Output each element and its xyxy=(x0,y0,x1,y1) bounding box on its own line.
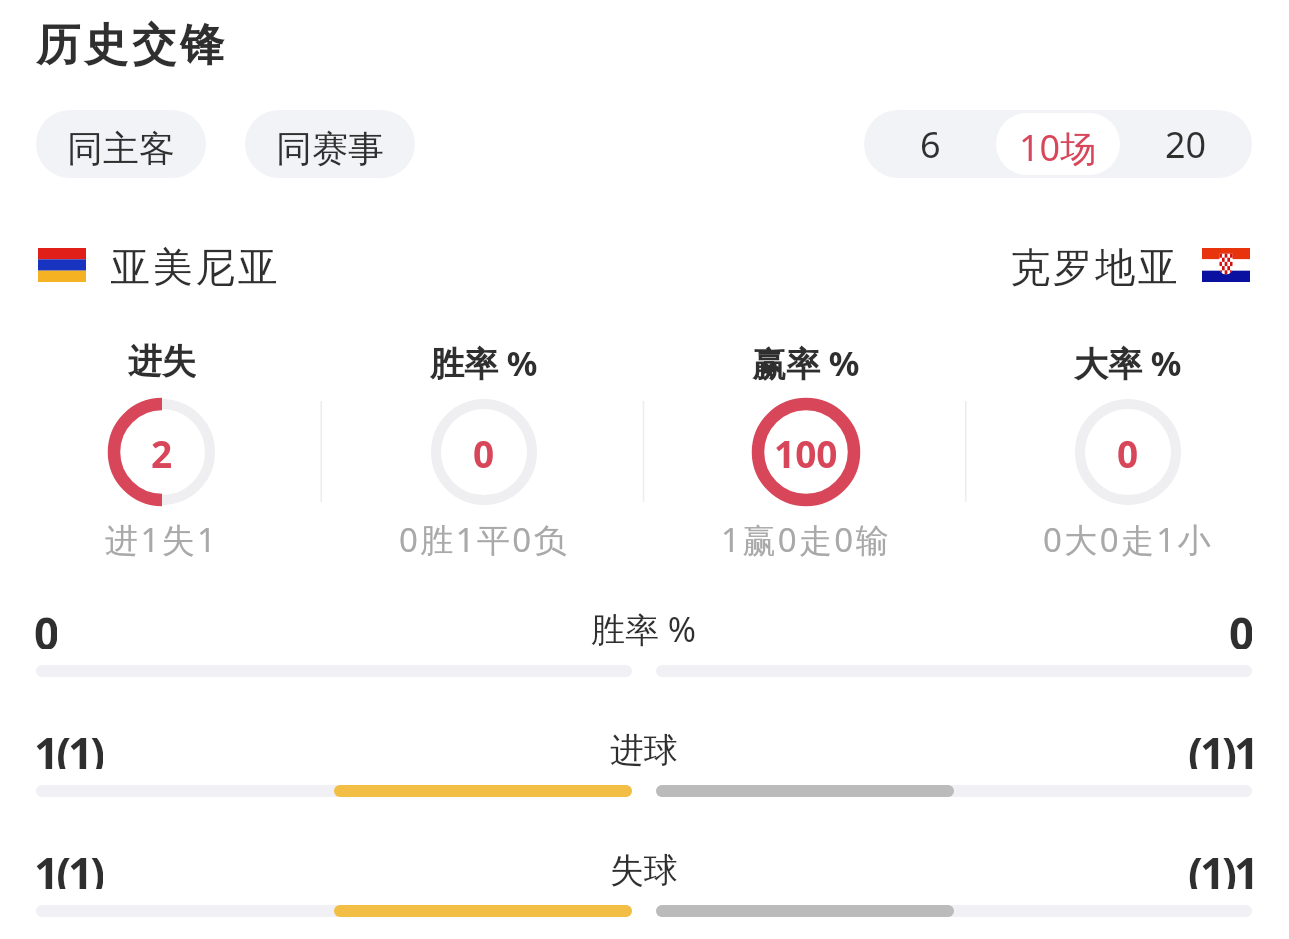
staticText: 进失 xyxy=(128,340,196,381)
button[interactable]: 进失 xyxy=(0,340,323,557)
button[interactable]: 胜率 % xyxy=(323,340,645,557)
staticText: 进球 xyxy=(610,729,678,772)
staticText: 同赛事 xyxy=(276,126,384,171)
staticText: 进1失1 xyxy=(105,517,219,557)
staticText: 亚美尼亚 xyxy=(109,242,279,292)
staticText: 克罗地亚 xyxy=(1009,242,1179,292)
other: Croatia flag xyxy=(1202,248,1250,282)
staticText: 0胜1平0负 xyxy=(399,517,570,557)
staticText: 1赢0走0输 xyxy=(721,517,892,557)
staticText: 20 xyxy=(1165,120,1207,169)
staticText: 1(1) xyxy=(34,723,103,769)
button[interactable]: 10场 xyxy=(996,113,1120,175)
staticText: 0 xyxy=(1229,603,1252,649)
staticText: 胜率 % xyxy=(591,606,697,652)
button[interactable]: 同主客 xyxy=(36,110,206,178)
button[interactable]: 同赛事 xyxy=(245,110,415,178)
button[interactable]: 20 xyxy=(1120,110,1252,178)
staticText: 0 xyxy=(473,428,495,478)
staticText: 2 xyxy=(151,428,173,478)
staticText: 1(1) xyxy=(34,843,103,889)
staticText: 6 xyxy=(920,120,941,169)
staticText: (1)1 xyxy=(1188,843,1257,889)
staticText: (1)1 xyxy=(1188,723,1257,769)
button[interactable]: 6 xyxy=(864,110,996,178)
staticText: 同主客 xyxy=(67,126,175,171)
staticText: 0 xyxy=(34,603,57,649)
staticText: 历史交锋 xyxy=(34,18,226,73)
staticText: 赢率 % xyxy=(752,340,860,381)
staticText: 0 xyxy=(1117,428,1139,478)
staticText: 大率 % xyxy=(1074,340,1182,381)
staticText: 10场 xyxy=(1019,123,1097,172)
staticText: 失球 xyxy=(610,849,678,892)
staticText: 胜率 % xyxy=(430,340,538,381)
staticText: 0大0走1小 xyxy=(1043,517,1214,557)
staticText: 100 xyxy=(774,428,838,478)
button[interactable]: 大率 % xyxy=(967,340,1289,557)
button[interactable]: 赢率 % xyxy=(645,340,967,557)
other: Armenia flag xyxy=(38,248,86,282)
